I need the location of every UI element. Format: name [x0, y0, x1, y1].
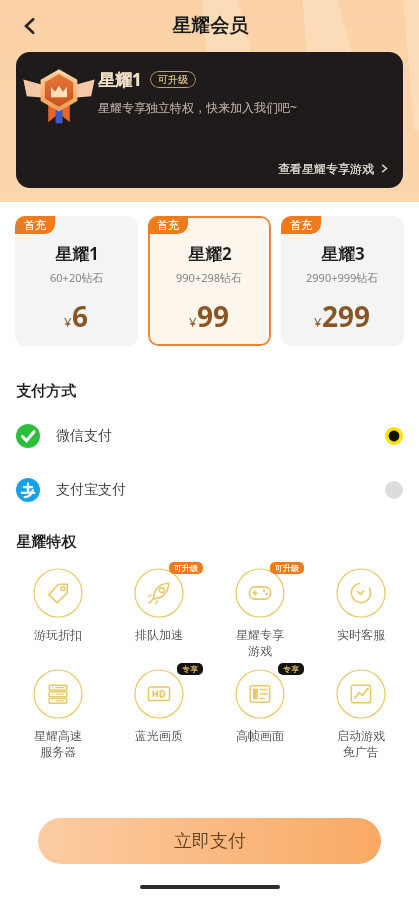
staticText: 99	[197, 297, 230, 335]
button[interactable]: 专享	[209, 663, 310, 743]
staticText: 支付方式	[16, 382, 76, 401]
staticText: 可升级	[158, 73, 188, 86]
button[interactable]: 支付宝支付	[0, 469, 419, 511]
staticText: 星耀特权	[16, 533, 76, 552]
staticText: ¥	[314, 313, 322, 331]
staticText: ¥	[64, 313, 72, 331]
staticText: 实时客服	[337, 627, 385, 642]
button[interactable]: 游玩折扣	[8, 562, 108, 642]
staticText: 专享	[283, 664, 299, 674]
button[interactable]: 专享	[108, 663, 209, 743]
button[interactable]: Back	[8, 4, 52, 48]
staticText: 星耀专享独立特权，快来加入我们吧~	[98, 99, 297, 115]
staticText: 游玩折扣	[34, 627, 82, 642]
staticText: 微信支付	[56, 427, 112, 445]
staticText: 蓝光画质	[135, 728, 183, 743]
staticText: 可升级	[275, 563, 299, 573]
staticText: 2990+999钻石	[306, 270, 379, 285]
button[interactable]: 星耀2	[148, 216, 271, 346]
button[interactable]: 星耀高速 服务器	[8, 663, 108, 760]
staticText: 990+298钻石	[176, 270, 243, 285]
staticText: 星耀专享 游戏	[236, 627, 284, 659]
staticText: 星耀1	[55, 242, 99, 265]
staticText: 首充	[290, 218, 312, 232]
button[interactable]: 启动游戏 免广告	[310, 663, 411, 760]
staticText: 星耀2	[188, 242, 232, 265]
staticText: 首充	[24, 218, 46, 232]
button[interactable]: 星耀3	[281, 216, 404, 346]
staticText: 6	[72, 297, 89, 335]
staticText: 星耀1	[98, 68, 142, 91]
button[interactable]: 查看星耀专享游戏	[278, 161, 389, 176]
staticText: 支付宝支付	[56, 481, 126, 499]
button[interactable]: 可升级	[108, 562, 209, 642]
staticText: 立即支付	[174, 830, 246, 853]
staticText: 星耀3	[321, 242, 365, 265]
staticText: 启动游戏 免广告	[337, 728, 385, 760]
staticText: 首充	[157, 218, 179, 232]
button[interactable]: 实时客服	[310, 562, 411, 642]
staticText: 299	[322, 297, 371, 335]
button[interactable]: 微信支付	[0, 415, 419, 457]
staticText: 可升级	[174, 563, 198, 573]
button[interactable]: 立即支付	[38, 818, 381, 864]
staticText: 排队加速	[135, 627, 183, 642]
staticText: 60+20钻石	[50, 270, 104, 285]
staticText: 星耀高速 服务器	[34, 728, 82, 760]
button[interactable]: 可升级	[209, 562, 310, 659]
button[interactable]: 星耀1	[16, 52, 403, 188]
staticText: 高帧画面	[236, 728, 284, 743]
staticText: ¥	[189, 313, 197, 331]
button[interactable]: 星耀1	[15, 216, 138, 346]
staticText: 星耀会员	[172, 14, 248, 38]
staticText: 专享	[182, 664, 198, 674]
staticText: 查看星耀专享游戏	[278, 161, 374, 176]
